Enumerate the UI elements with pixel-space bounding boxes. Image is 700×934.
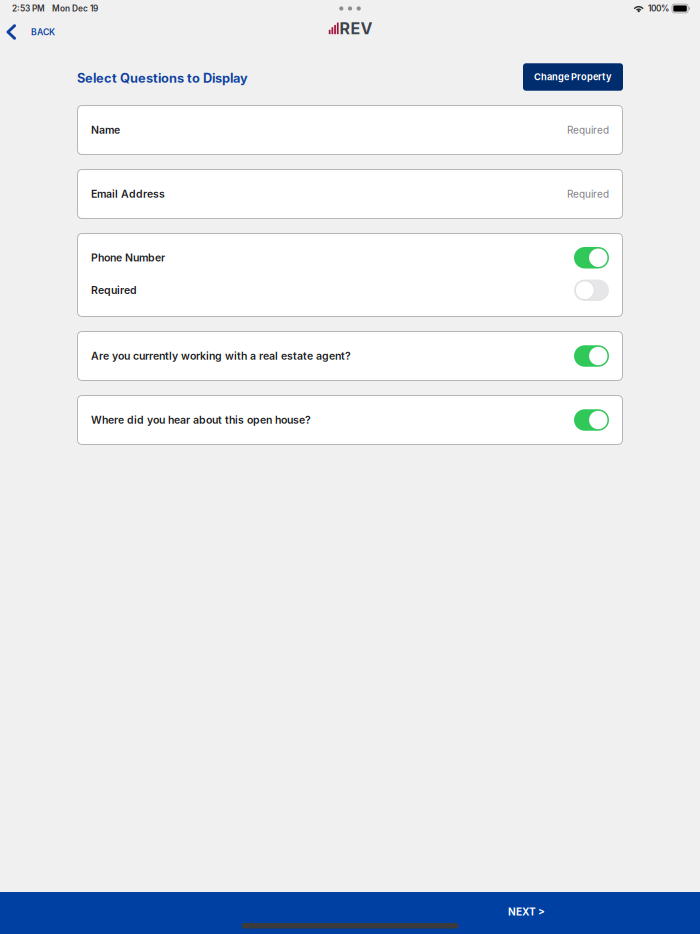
button[interactable]: Where did you hear about this open house… — [77, 395, 623, 445]
staticText: REV — [340, 19, 373, 38]
button[interactable]: Name — [77, 105, 623, 155]
staticText: 100% — [648, 3, 669, 13]
staticText: Name — [91, 124, 120, 136]
staticText: Mon Dec 19 — [52, 3, 98, 13]
staticText: Required — [91, 284, 137, 297]
staticText: Phone Number — [91, 251, 165, 264]
button[interactable]: Are you currently working with a real es… — [77, 331, 623, 381]
staticText: Where did you hear about this open house… — [91, 414, 311, 426]
button[interactable]: NEXT > — [484, 904, 569, 934]
staticText: Required — [567, 124, 609, 136]
button[interactable]: Email Address — [77, 169, 623, 219]
staticText: Email Address — [91, 188, 165, 200]
button[interactable]: BACK — [0, 18, 65, 46]
staticText: Required — [567, 188, 609, 200]
staticText: Are you currently working with a real es… — [91, 350, 351, 362]
staticText: Change Property — [534, 71, 612, 82]
button[interactable]: Phone Number — [77, 233, 623, 317]
staticText: NEXT > — [508, 906, 545, 918]
button[interactable]: Change Property — [523, 63, 623, 91]
staticText: 2:53 PM — [12, 3, 45, 13]
staticText: Select Questions to Display — [77, 70, 248, 86]
staticText: BACK — [31, 27, 55, 37]
